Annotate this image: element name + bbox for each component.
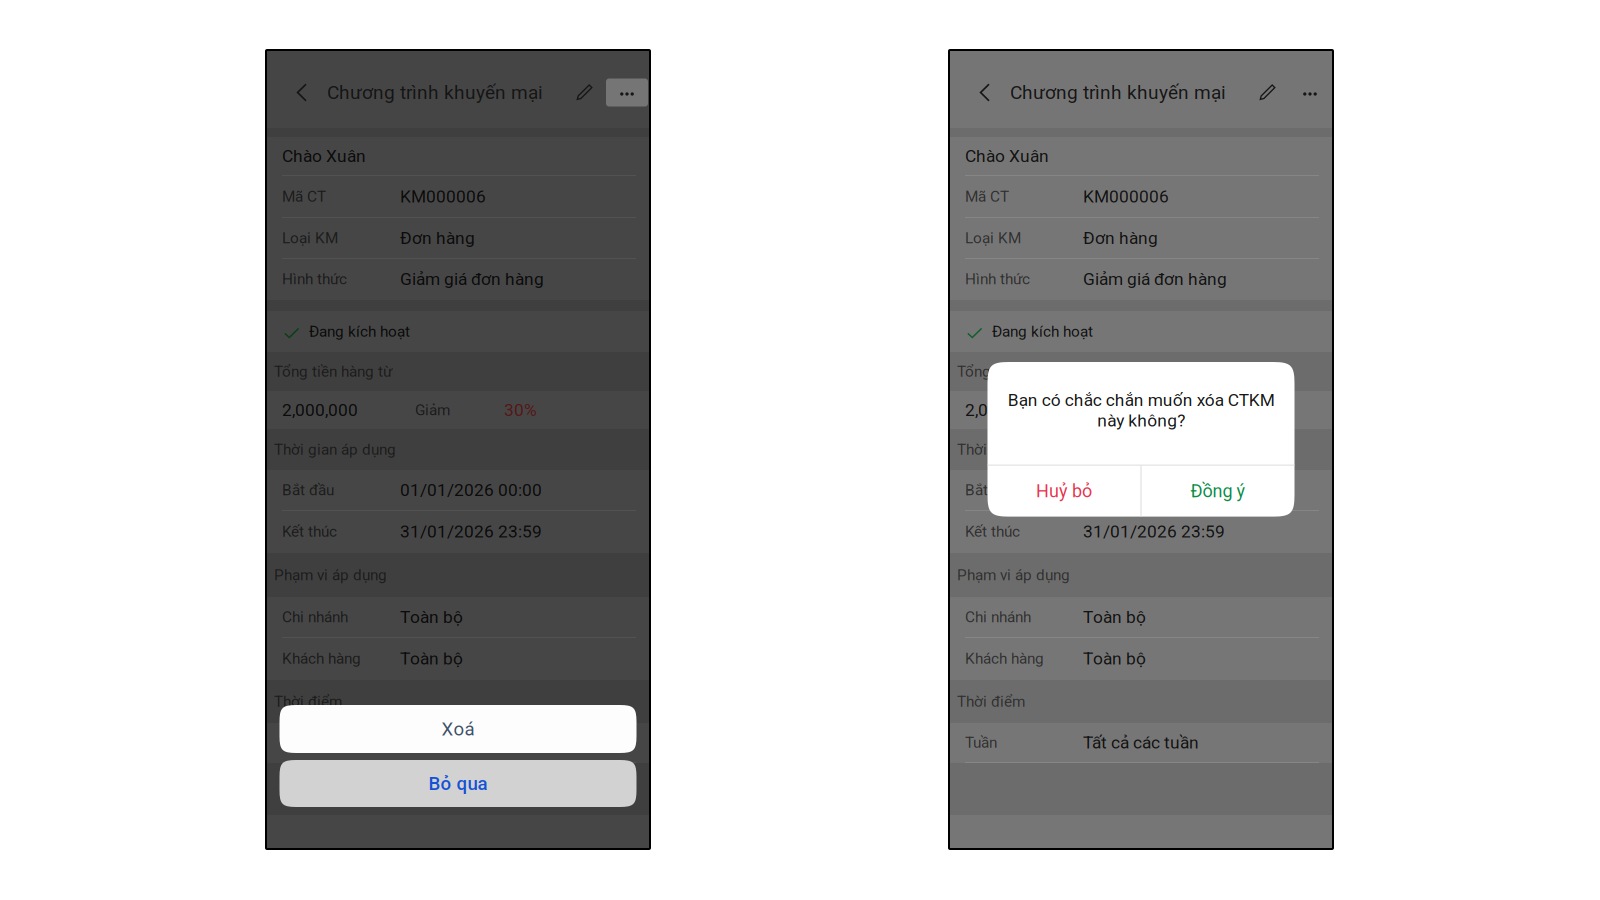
staticText: Loại KM — [965, 229, 1021, 247]
staticText: Huỷ bỏ — [1036, 481, 1092, 502]
staticText: 30% — [1187, 400, 1220, 420]
staticText: KM000006 — [400, 186, 486, 207]
staticText: Loại KM — [282, 229, 338, 247]
staticText: Toàn bộ — [400, 607, 463, 627]
staticText: Mã CT — [282, 187, 326, 205]
staticText: Hình thức — [965, 270, 1030, 288]
staticText: Tuần — [282, 733, 314, 751]
button[interactable]: Back — [284, 70, 320, 114]
staticText: Khách hàng — [965, 649, 1044, 667]
staticText: Giảm — [1098, 401, 1133, 419]
staticText: Xoá — [441, 718, 474, 740]
staticText: Bạn có chắc chắn muốn xóa CTKM này không… — [1007, 390, 1274, 431]
staticText: Đồng ý — [1190, 481, 1245, 502]
staticText: Chương trình khuyến mại — [1010, 81, 1226, 104]
staticText: Đơn hàng — [1083, 228, 1158, 248]
button[interactable]: Edit — [1246, 70, 1289, 114]
staticText: Kết thúc — [282, 522, 337, 540]
staticText: Chương trình khuyến mại — [327, 81, 543, 104]
staticText: Thời gian áp dụng — [957, 440, 1079, 458]
button[interactable]: Edit — [563, 70, 606, 114]
staticText: 2,000,000 — [282, 400, 358, 420]
button[interactable]: Đồng ý — [1141, 466, 1294, 517]
staticText: Phạm vi áp dụng — [274, 566, 387, 584]
staticText: 31/01/2026 23:59 — [400, 521, 542, 542]
staticText: 31/01/2026 23:59 — [1083, 521, 1225, 542]
button[interactable]: Bỏ qua — [279, 760, 636, 807]
staticText: Thời điểm — [274, 692, 342, 710]
button[interactable]: Xoá — [279, 705, 636, 753]
staticText: Toàn bộ — [1083, 648, 1146, 669]
staticText: Toàn bộ — [1083, 607, 1146, 627]
staticText: Toàn bộ — [400, 648, 463, 669]
staticText: Hình thức — [282, 270, 347, 288]
button[interactable]: More options — [606, 70, 648, 114]
staticText: 01/01/2026 00:00 — [400, 480, 542, 500]
staticText: Khách hàng — [282, 649, 361, 667]
staticText: Đang kích hoạt — [309, 322, 410, 340]
staticText: Chào Xuân — [965, 146, 1049, 166]
staticText: Đang kích hoạt — [992, 322, 1093, 340]
button[interactable]: Huỷ bỏ — [987, 466, 1140, 517]
staticText: Tất cả các tuần — [1083, 732, 1199, 753]
staticText: Thời gian áp dụng — [274, 440, 396, 458]
staticText: Phạm vi áp dụng — [957, 566, 1070, 584]
staticText: 2,000,000 — [965, 400, 1041, 420]
staticText: Chào Xuân — [282, 146, 366, 166]
staticText: Chi nhánh — [282, 608, 348, 626]
staticText: Thời điểm — [957, 692, 1025, 710]
staticText: Giảm giá đơn hàng — [1083, 269, 1227, 289]
button[interactable]: More options — [1289, 70, 1331, 114]
staticText: Tuần — [965, 733, 997, 751]
button[interactable]: Back — [967, 70, 1003, 114]
staticText: 01/01/2026 00:00 — [1083, 480, 1225, 500]
staticText: Chi nhánh — [965, 608, 1031, 626]
staticText: KM000006 — [1083, 186, 1169, 207]
staticText: Tất cả các tuần — [400, 732, 516, 753]
staticText: Bắt đầu — [965, 481, 1017, 499]
staticText: Bỏ qua — [428, 773, 487, 794]
staticText: Bắt đầu — [282, 481, 334, 499]
staticText: 30% — [504, 400, 537, 420]
staticText: Giảm — [415, 401, 450, 419]
staticText: Kết thúc — [965, 522, 1020, 540]
staticText: Tổng tiền hàng từ — [274, 362, 392, 380]
staticText: Giảm giá đơn hàng — [400, 269, 544, 289]
staticText: Đơn hàng — [400, 228, 475, 248]
staticText: Tổng tiền hàng từ — [957, 362, 1075, 380]
staticText: Mã CT — [965, 187, 1009, 205]
